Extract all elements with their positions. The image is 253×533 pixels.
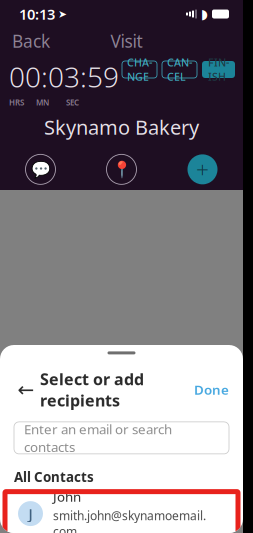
button[interactable]: Back — [14, 378, 38, 402]
staticText: Enter an email or search contacts — [24, 420, 172, 456]
button[interactable]: Back — [0, 25, 50, 56]
staticText: + — [196, 154, 209, 184]
staticText: Done — [194, 381, 229, 398]
button[interactable]: J — [5, 492, 238, 533]
staticText: 💬 — [30, 160, 50, 178]
staticText: 10:13 — [19, 4, 55, 24]
staticText: VISIT DETAILS — [14, 189, 66, 200]
staticText: J — [28, 504, 32, 523]
staticText: smith.john@skynamoemail.com — [53, 507, 206, 533]
staticText: All Contacts — [14, 468, 94, 486]
staticText: ← — [17, 378, 34, 401]
button[interactable]: Enter an email or search contacts — [14, 422, 229, 454]
staticText: FINISH — [208, 55, 229, 84]
staticText: Back — [12, 29, 50, 52]
staticText: Select or add recipients — [40, 368, 144, 411]
staticText: Skynamo Bakery — [44, 114, 199, 140]
button[interactable]: ADD — [162, 152, 243, 202]
button[interactable]: Done — [194, 377, 229, 402]
staticText: HRS — [9, 97, 24, 108]
staticText: Visit — [110, 29, 142, 52]
button[interactable]: CUSTOMER DETAILS — [81, 152, 162, 202]
staticText: ADD — [194, 189, 211, 200]
staticText: ➤ — [58, 8, 67, 20]
staticText: CHANGE — [127, 55, 152, 84]
staticText: 📍 — [111, 160, 131, 178]
staticText: SEC — [66, 97, 79, 108]
button[interactable]: CANCEL — [162, 61, 197, 78]
staticText: CUSTOMER DETAILS — [85, 189, 158, 200]
button[interactable]: VISIT DETAILS — [0, 152, 81, 202]
staticText: 00:03:59 — [9, 58, 119, 95]
staticText: MN — [36, 97, 49, 108]
staticText: CANCEL — [167, 55, 192, 84]
staticText: John — [53, 488, 81, 505]
button[interactable]: FINISH — [202, 61, 235, 78]
button[interactable]: CHANGE — [122, 61, 157, 78]
staticText: ◗ — [201, 6, 208, 21]
